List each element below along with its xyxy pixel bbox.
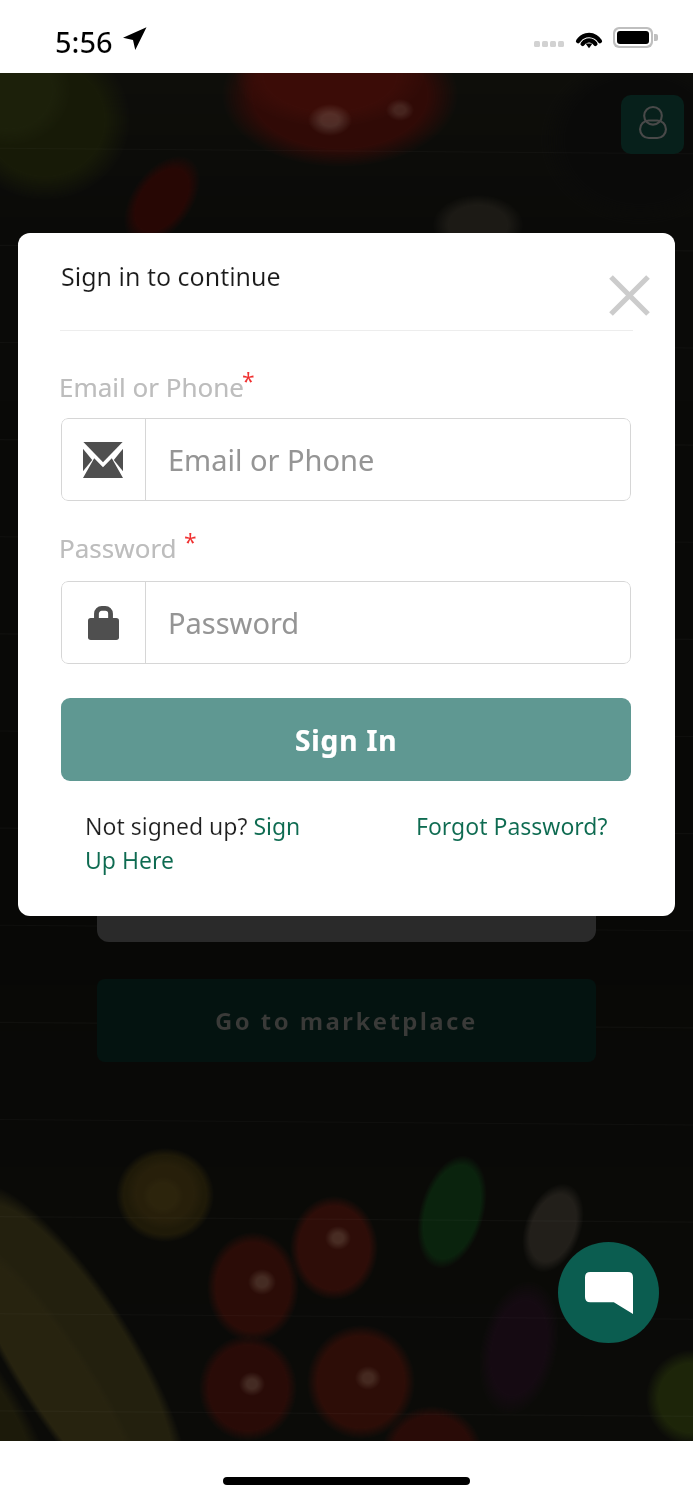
button[interactable]: Profile (621, 95, 684, 154)
staticText: Email or Phone (59, 369, 245, 404)
staticText: Email or Phone (168, 440, 375, 479)
button[interactable]: Forgot Password? (416, 810, 608, 841)
button[interactable]: Email or Phone (61, 418, 631, 501)
staticText: Sign in to continue (61, 259, 281, 293)
staticText: Sign In (295, 721, 398, 759)
staticText: Password (59, 530, 177, 565)
button[interactable]: Password (61, 581, 631, 664)
staticText: Not signed up? Sign Up Here (85, 810, 320, 875)
staticText: * (242, 365, 255, 396)
staticText: Go to marketplace (215, 1004, 478, 1037)
button[interactable]: Sign In (61, 698, 631, 781)
button[interactable]: Go to marketplace (97, 979, 596, 1062)
staticText: 5:56 (55, 22, 113, 61)
button[interactable]: Not signed up? Sign Up Here (85, 810, 320, 875)
staticText: Password (168, 603, 300, 642)
button[interactable]: Close (593, 258, 665, 330)
staticText: Forgot Password? (416, 810, 608, 841)
button[interactable]: Chat (558, 1242, 659, 1343)
staticText: * (184, 526, 197, 557)
